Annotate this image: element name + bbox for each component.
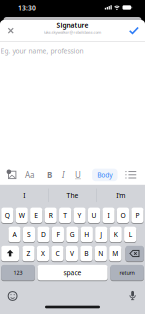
staticText: I — [23, 191, 25, 200]
button[interactable]: I — [0, 0, 145, 314]
button[interactable]: H — [81, 227, 93, 242]
button[interactable]: return — [110, 265, 144, 280]
button[interactable]: Q — [1, 208, 13, 223]
staticText: J — [100, 230, 102, 239]
staticText: Body — [97, 170, 112, 179]
button[interactable]: Close — [0, 0, 145, 314]
button[interactable]: D — [37, 227, 49, 242]
staticText: U — [75, 169, 81, 180]
staticText: luke.skywalker@rebelsbase.com — [43, 30, 101, 35]
button[interactable]: I — [102, 208, 115, 223]
button[interactable]: The — [0, 0, 145, 314]
button[interactable]: X — [37, 246, 49, 261]
button[interactable]: B — [80, 246, 92, 261]
button[interactable]: C — [51, 246, 63, 261]
button[interactable]: V — [66, 246, 78, 261]
staticText: Signature — [56, 21, 88, 30]
staticText: B — [47, 169, 52, 180]
button[interactable]: Delete — [125, 246, 144, 261]
button[interactable]: R — [45, 208, 57, 223]
button[interactable]: Insert image — [4, 168, 18, 182]
staticText: S — [27, 230, 31, 239]
staticText: Eg. your name, profession — [0, 47, 83, 55]
staticText: return — [120, 269, 135, 276]
button[interactable]: E — [30, 208, 42, 223]
staticText: I — [107, 211, 109, 220]
button[interactable]: Paragraph style — [0, 0, 145, 314]
button[interactable]: Italic — [0, 0, 145, 314]
staticText: I'm — [116, 191, 125, 200]
button[interactable]: J — [95, 227, 107, 242]
staticText: 13:30 — [18, 3, 36, 12]
button[interactable]: F — [52, 227, 64, 242]
button[interactable]: O — [117, 208, 129, 223]
button[interactable]: T — [59, 208, 71, 223]
staticText: G — [70, 230, 75, 239]
button[interactable]: M — [109, 246, 121, 261]
staticText: F — [56, 230, 59, 239]
button[interactable]: N — [95, 246, 107, 261]
button[interactable]: Y — [73, 208, 86, 223]
staticText: Z — [26, 249, 30, 258]
staticText: R — [49, 211, 53, 220]
staticText: H — [84, 230, 89, 239]
button[interactable]: Save — [0, 0, 145, 314]
staticText: O — [120, 211, 125, 220]
staticText: L — [129, 230, 132, 239]
button[interactable]: Underline — [0, 0, 145, 314]
staticText: X — [41, 249, 45, 258]
staticText: C — [55, 249, 59, 258]
button[interactable]: U — [88, 208, 100, 223]
button[interactable]: Dictate — [128, 290, 138, 302]
staticText: Aa — [25, 169, 34, 180]
staticText: V — [70, 249, 74, 258]
staticText: D — [41, 230, 46, 239]
staticText: N — [98, 249, 103, 258]
staticText: W — [19, 211, 25, 220]
staticText: I — [62, 169, 65, 180]
staticText: A — [12, 230, 16, 239]
button[interactable]: K — [110, 227, 122, 242]
staticText: E — [34, 211, 38, 220]
button[interactable]: Shift — [1, 246, 19, 261]
staticText: B — [84, 249, 88, 258]
button[interactable]: 123 — [1, 265, 35, 280]
button[interactable]: Emoji — [7, 290, 19, 302]
staticText: 123 — [13, 269, 22, 276]
button[interactable]: Text style — [0, 0, 145, 314]
staticText: P — [135, 211, 139, 220]
staticText: The — [66, 191, 78, 200]
button[interactable]: P — [131, 208, 143, 223]
button[interactable]: W — [16, 208, 28, 223]
button[interactable]: I'm — [0, 0, 145, 314]
staticText: U — [92, 211, 97, 220]
button[interactable]: Bold — [0, 0, 145, 314]
button[interactable]: S — [23, 227, 35, 242]
button[interactable]: G — [66, 227, 78, 242]
staticText: T — [63, 211, 67, 220]
button[interactable]: Z — [22, 246, 35, 261]
staticText: K — [114, 230, 118, 239]
button[interactable]: A — [8, 227, 21, 242]
button[interactable]: space — [38, 265, 108, 280]
staticText: Y — [78, 211, 82, 220]
staticText: space — [64, 268, 82, 277]
button[interactable]: Bulleted list — [125, 169, 137, 181]
staticText: M — [112, 249, 118, 258]
button[interactable]: L — [124, 227, 136, 242]
staticText: Q — [5, 211, 10, 220]
